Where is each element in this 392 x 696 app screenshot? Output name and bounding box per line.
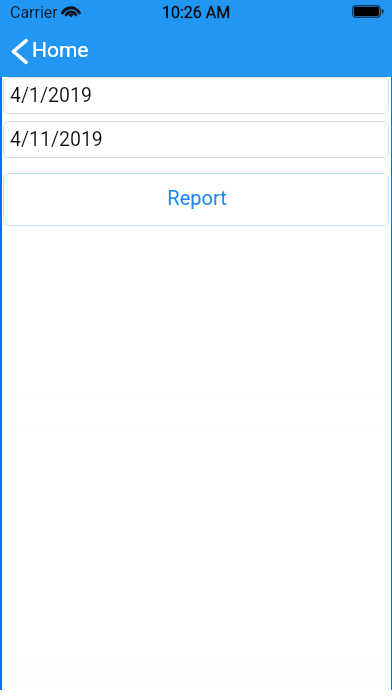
button[interactable]: Report [3,173,389,226]
staticText: Home [32,38,89,63]
button[interactable]: 4/1/2019 [3,77,389,114]
staticText: Report [167,186,227,209]
staticText: Carrier [10,3,58,22]
staticText: 4/1/2019 [10,84,92,107]
staticText: 4/11/2019 [10,128,103,151]
button[interactable]: 4/11/2019 [3,121,389,158]
button[interactable]: Back [0,27,392,77]
other: Back [12,38,27,65]
staticText: 10:26 AM [162,3,231,22]
